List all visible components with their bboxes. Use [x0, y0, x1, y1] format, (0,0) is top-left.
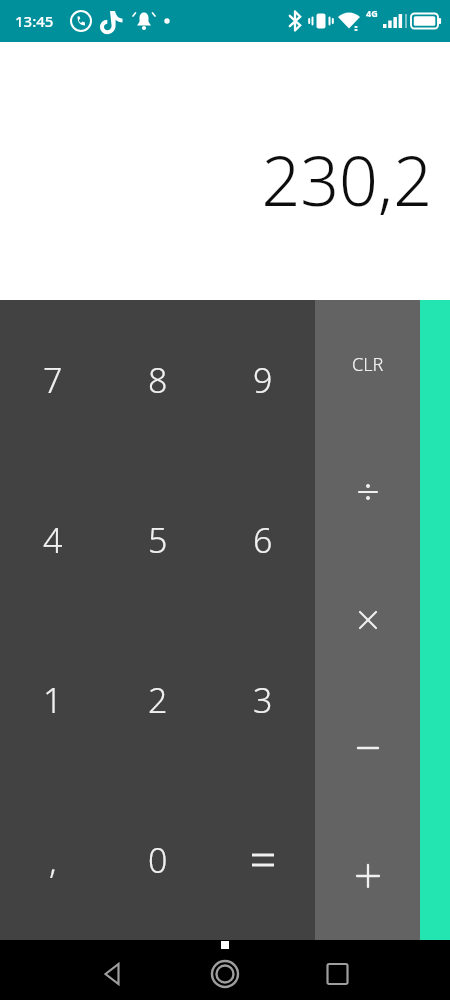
- button[interactable]: 8: [105, 300, 210, 460]
- button[interactable]: 6: [210, 460, 315, 620]
- staticText: 7: [43, 357, 63, 403]
- button[interactable]: 4: [0, 460, 105, 620]
- staticText: 2: [148, 677, 168, 723]
- button[interactable]: [210, 780, 315, 940]
- button[interactable]: 2: [105, 620, 210, 780]
- button[interactable]: 9: [210, 300, 315, 460]
- staticText: 29: [416, 13, 428, 27]
- button[interactable]: 0: [105, 780, 210, 940]
- button[interactable]: 1: [0, 620, 105, 780]
- staticText: ,: [49, 837, 57, 883]
- button[interactable]: Divide: [315, 428, 420, 556]
- button[interactable]: CLR: [315, 300, 420, 428]
- button[interactable]: Add: [315, 812, 420, 940]
- staticText: 0: [148, 837, 168, 883]
- staticText: 13:45: [15, 11, 54, 31]
- staticText: 4G: [366, 7, 378, 19]
- staticText: 8: [148, 357, 168, 403]
- staticText: 9: [253, 357, 273, 403]
- staticText: 230,2: [261, 133, 432, 226]
- staticText: 1: [43, 677, 63, 723]
- button[interactable]: 7: [0, 300, 105, 460]
- button[interactable]: Multiply: [315, 556, 420, 684]
- button[interactable]: 3: [210, 620, 315, 780]
- staticText: 4: [43, 517, 63, 563]
- button[interactable]: Subtract: [315, 684, 420, 812]
- button[interactable]: 5: [105, 460, 210, 620]
- staticText: 6: [253, 517, 273, 563]
- staticText: 3: [253, 677, 273, 723]
- staticText: CLR: [352, 352, 384, 377]
- staticText: 5: [148, 517, 168, 563]
- button[interactable]: ,: [0, 780, 105, 940]
